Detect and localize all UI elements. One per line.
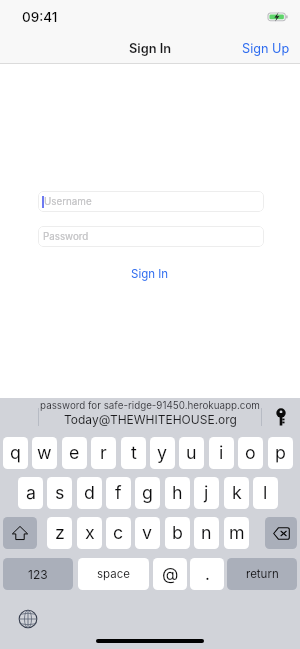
staticText: Today@THEWHITEHOUSE.org [64,412,237,427]
button[interactable]: 123 [3,558,73,590]
staticText: x [85,522,95,544]
staticText: return [246,567,279,581]
button[interactable]: x [77,517,102,549]
button[interactable]: password for safe-ridge-91450.herokuapp.… [39,398,261,434]
staticText: o [245,442,256,464]
staticText: p [275,442,286,464]
staticText: r [100,442,107,464]
button[interactable]: w [32,437,57,469]
staticText: v [142,522,153,544]
staticText: d [84,482,95,504]
button[interactable]: h [165,477,190,509]
staticText: s [55,482,65,504]
button[interactable]: Switch keyboard [15,606,41,632]
staticText: h [172,482,183,504]
button[interactable]: e [62,437,87,469]
button[interactable]: @ [153,558,187,590]
staticText: n [201,522,212,544]
staticText: Sign In [129,41,172,56]
button[interactable]: s [47,477,72,509]
button[interactable]: Password [38,226,264,247]
button[interactable]: k [224,477,249,509]
button[interactable]: Backspace [265,517,297,549]
staticText: e [69,442,80,464]
staticText: m [229,522,245,544]
button[interactable]: t [121,437,146,469]
staticText: Sign In [131,267,169,281]
staticText: Password [43,231,89,243]
staticText: space [97,567,130,581]
button[interactable]: return [227,558,297,590]
staticText: c [113,522,124,544]
button[interactable]: f [106,477,131,509]
staticText: password for safe-ridge-91450.herokuapp.… [40,400,260,412]
staticText: Username [44,196,92,208]
staticText: i [219,442,224,464]
button[interactable]: i [209,437,234,469]
button[interactable]: o [238,437,263,469]
button[interactable]: z [47,517,72,549]
button[interactable]: Passwords [269,402,293,430]
button[interactable]: q [3,437,28,469]
staticText: f [115,482,122,504]
button[interactable]: n [194,517,219,549]
staticText: @ [162,564,179,585]
button[interactable]: d [77,477,102,509]
staticText: b [172,522,183,544]
button[interactable]: g [135,477,160,509]
button[interactable]: Username [38,191,264,212]
staticText: k [232,482,242,504]
staticText: w [37,442,52,464]
button[interactable]: a [18,477,43,509]
staticText: u [186,442,197,464]
button[interactable]: r [91,437,116,469]
staticText: a [26,482,36,504]
staticText: Sign Up [242,41,290,56]
button[interactable]: u [179,437,204,469]
button[interactable]: . [190,558,224,590]
button[interactable]: y [150,437,175,469]
button[interactable]: Shift [3,517,37,549]
staticText: . [205,564,210,585]
staticText: 123 [28,567,48,582]
staticText: t [131,442,137,464]
button[interactable]: m [224,517,249,549]
button[interactable]: j [194,477,219,509]
button[interactable]: v [135,517,160,549]
staticText: y [157,442,168,464]
staticText: g [142,482,153,504]
button[interactable]: Sign Up [238,38,294,58]
staticText: z [55,522,65,544]
staticText: j [204,482,209,504]
button[interactable]: b [165,517,190,549]
button[interactable]: l [253,477,278,509]
button[interactable]: p [268,437,293,469]
staticText: 09:41 [22,9,58,25]
staticText: q [10,442,21,464]
button[interactable]: c [106,517,131,549]
button[interactable]: Sign In [121,265,179,283]
button[interactable]: space [78,558,149,590]
staticText: l [263,482,268,504]
